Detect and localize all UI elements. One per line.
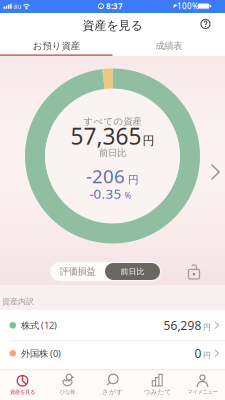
staticText: % xyxy=(124,190,131,201)
staticText: 成績表 xyxy=(155,40,182,52)
staticText: 100% xyxy=(177,1,199,11)
staticText: -0.35 xyxy=(89,185,121,202)
button[interactable]: 外国株 (0) xyxy=(0,339,225,367)
staticText: 57,365 xyxy=(70,121,141,151)
staticText: さがす xyxy=(102,388,123,396)
staticText: ひな株 xyxy=(60,389,75,395)
staticText: 資産を見る xyxy=(10,389,35,395)
staticText: 前日比 xyxy=(120,267,144,276)
staticText: 前日比 xyxy=(99,147,126,159)
button[interactable]: 資産を見る xyxy=(0,370,45,400)
button[interactable]: 詳細を見る xyxy=(208,162,222,181)
staticText: 資産内訳 xyxy=(2,297,34,306)
button[interactable]: マイメニュー xyxy=(180,370,225,400)
button[interactable]: 表示ロック xyxy=(186,262,201,280)
button[interactable]: 前日比 xyxy=(105,263,160,280)
button[interactable]: ヘルプ xyxy=(197,16,213,32)
staticText: すべての資産 xyxy=(83,116,141,127)
staticText: 0 xyxy=(194,345,201,361)
staticText: 株式 (12) xyxy=(21,319,57,331)
staticText: 外国株 (0) xyxy=(21,347,61,359)
staticText: 円 xyxy=(128,173,139,186)
staticText: 資産を見る xyxy=(82,18,142,33)
button[interactable]: 評価損益 xyxy=(50,262,104,281)
staticText: つみたて xyxy=(143,388,171,396)
button[interactable]: さがす xyxy=(90,370,135,400)
button[interactable]: 株式 (12) xyxy=(0,310,225,340)
staticText: 円 xyxy=(203,322,211,332)
staticText: au xyxy=(13,2,21,11)
staticText: 円 xyxy=(203,350,211,360)
button[interactable]: お預り資産 xyxy=(0,36,112,55)
staticText: お預り資産 xyxy=(33,40,80,52)
button[interactable]: 成績表 xyxy=(112,36,225,55)
button[interactable]: ひな株 xyxy=(45,370,90,400)
staticText: マイメニュー xyxy=(187,389,217,395)
staticText: 評価損益 xyxy=(59,266,95,277)
staticText: 8:37 xyxy=(106,1,123,11)
staticText: 円 xyxy=(142,133,154,148)
staticText: -206 xyxy=(86,164,125,188)
button[interactable]: つみたて xyxy=(135,370,180,400)
staticText: 56,298 xyxy=(163,317,201,333)
